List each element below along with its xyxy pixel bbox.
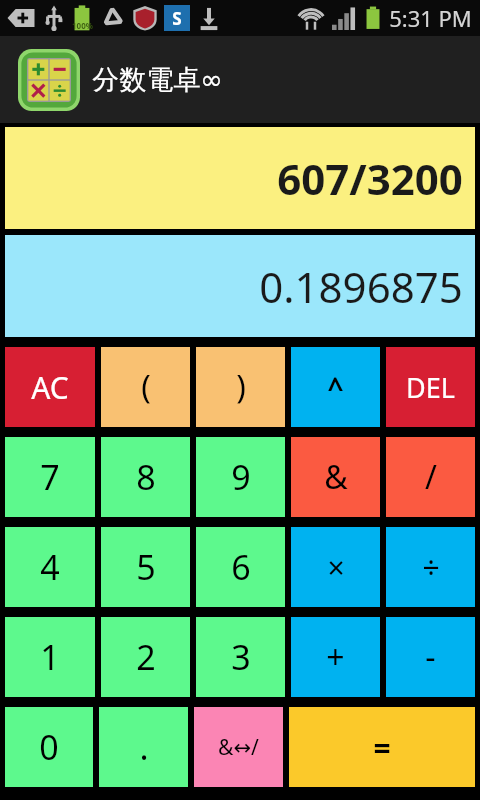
button[interactable]: .: [99, 707, 188, 787]
staticText: 9: [231, 454, 251, 500]
button[interactable]: 1: [5, 617, 95, 697]
staticText: 2: [136, 634, 156, 680]
staticText: DEL: [406, 369, 455, 406]
staticText: AC: [31, 367, 69, 408]
button[interactable]: AC: [5, 347, 95, 427]
staticText: ×: [327, 547, 345, 588]
staticText: 分数電卓∞: [92, 63, 223, 97]
staticText: /: [425, 455, 437, 499]
button[interactable]: &: [291, 437, 380, 517]
button[interactable]: &↔/: [194, 707, 283, 787]
button[interactable]: DEL: [386, 347, 475, 427]
staticText: ÷: [422, 547, 440, 588]
button[interactable]: 7: [5, 437, 95, 517]
button[interactable]: ×: [291, 527, 380, 607]
button[interactable]: 3: [196, 617, 285, 697]
staticText: 8: [136, 454, 156, 500]
staticText: 0.1896875: [259, 258, 463, 315]
button[interactable]: =: [289, 707, 475, 787]
button[interactable]: 2: [101, 617, 190, 697]
staticText: 5:31 PM: [389, 3, 472, 33]
staticText: +: [326, 635, 345, 679]
button[interactable]: -: [386, 617, 475, 697]
button[interactable]: 607/3200: [5, 127, 475, 229]
staticText: 7: [40, 454, 60, 500]
button[interactable]: ): [196, 347, 285, 427]
button[interactable]: 4: [5, 527, 95, 607]
staticText: -: [425, 635, 436, 679]
staticText: 0: [39, 724, 59, 770]
button[interactable]: 9: [196, 437, 285, 517]
staticText: (: [141, 365, 151, 409]
staticText: 100%: [72, 20, 93, 31]
button[interactable]: 8: [101, 437, 190, 517]
staticText: 3: [231, 634, 251, 680]
button[interactable]: (: [101, 347, 190, 427]
staticText: 1: [40, 634, 60, 680]
button[interactable]: /: [386, 437, 475, 517]
staticText: ^: [327, 368, 344, 406]
staticText: =: [373, 727, 391, 768]
button[interactable]: ^: [291, 347, 380, 427]
staticText: &↔/: [218, 733, 259, 762]
staticText: 5: [136, 544, 156, 590]
staticText: 4: [40, 544, 60, 590]
button[interactable]: ÷: [386, 527, 475, 607]
staticText: 607/3200: [277, 150, 463, 207]
button[interactable]: 6: [196, 527, 285, 607]
staticText: S: [172, 7, 182, 30]
staticText: &: [324, 455, 348, 499]
button[interactable]: 0: [5, 707, 93, 787]
button[interactable]: 5: [101, 527, 190, 607]
button[interactable]: 0.1896875: [5, 235, 475, 337]
staticText: ): [236, 365, 246, 409]
staticText: .: [139, 724, 149, 770]
button[interactable]: +: [291, 617, 380, 697]
staticText: 6: [231, 544, 251, 590]
